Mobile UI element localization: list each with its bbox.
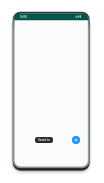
staticText: 9:30 xyxy=(20,14,27,19)
button[interactable]: Add xyxy=(72,136,80,144)
button[interactable]: Saved to library xyxy=(35,137,53,143)
staticText: Saved to library xyxy=(35,138,53,142)
